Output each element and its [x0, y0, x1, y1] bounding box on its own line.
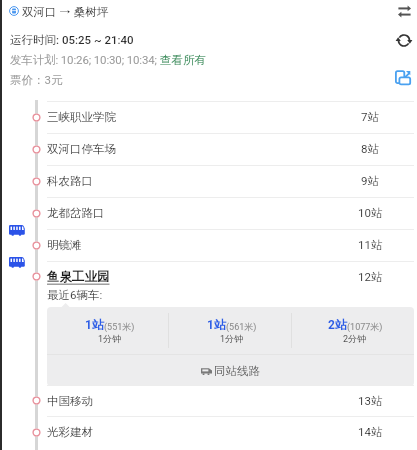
staticText: 明镜滩 — [47, 238, 82, 252]
staticText: 1站 — [85, 317, 104, 332]
staticText: 9站 — [361, 174, 379, 188]
staticText: 中国移动 — [47, 394, 93, 408]
button[interactable]: 同站线路 — [47, 355, 414, 386]
button[interactable]: 查看所有 — [160, 53, 206, 67]
staticText: 8站 — [361, 142, 379, 156]
staticText: 运行时间: 05:25 ~ 21:40 — [10, 33, 134, 47]
staticText: 1站 — [207, 317, 226, 332]
staticText: 14站 — [358, 425, 383, 439]
staticText: 13站 — [358, 394, 383, 408]
button[interactable]: 明镜滩 — [0, 229, 417, 261]
button[interactable]: Swap direction — [394, 1, 414, 21]
staticText: 1分钟 — [220, 333, 244, 344]
staticText: 2分钟 — [343, 333, 367, 344]
button[interactable]: Open in split screen — [393, 67, 413, 87]
button[interactable]: 光彩建材 — [0, 416, 417, 448]
button[interactable]: 三峡职业学院 — [0, 101, 417, 133]
staticText: (1077米) — [347, 321, 383, 332]
button[interactable]: 中国移动 — [0, 385, 417, 416]
staticText: 10站 — [358, 206, 383, 220]
staticText: 11站 — [358, 238, 383, 252]
button[interactable]: 1站 — [171, 307, 293, 354]
button[interactable]: 科农路口 — [0, 165, 417, 197]
staticText: 12站 — [358, 270, 383, 284]
button[interactable]: 1站 — [49, 307, 170, 354]
button[interactable]: 双河口停车场 — [0, 133, 417, 165]
staticText: 双河口 → 桑树坪 — [22, 5, 109, 19]
button[interactable]: 双河口 → 桑树坪 — [4, 1, 91, 21]
staticText: 1分钟 — [98, 333, 122, 344]
staticText: (551米) — [104, 321, 135, 332]
staticText: 龙都岔路口 — [47, 206, 105, 220]
staticText: 7站 — [361, 110, 379, 124]
staticText: 科农路口 — [47, 174, 93, 188]
button[interactable]: Refresh — [394, 30, 414, 50]
staticText: 三峡职业学院 — [47, 110, 116, 124]
staticText: 鱼泉工业园 — [47, 269, 110, 285]
staticText: 票价：3元 — [10, 73, 63, 87]
staticText: 最近6辆车: — [47, 288, 103, 302]
staticText: 光彩建材 — [47, 425, 93, 439]
staticText: 2站 — [328, 317, 347, 332]
button[interactable]: 鱼泉工业园 — [0, 261, 417, 385]
button[interactable]: 2站 — [294, 307, 414, 354]
staticText: 同站线路 — [214, 364, 260, 378]
button[interactable]: 龙都岔路口 — [0, 197, 417, 229]
staticText: 双河口停车场 — [47, 142, 116, 156]
staticText: (561米) — [226, 321, 257, 332]
staticText: 发车计划: 10:26; 10:30; 10:34; — [10, 53, 157, 67]
